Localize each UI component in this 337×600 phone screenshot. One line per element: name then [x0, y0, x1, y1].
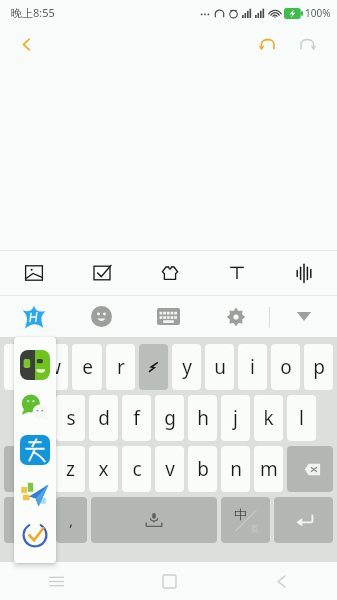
button[interactable]: m: [254, 446, 283, 492]
button[interactable]: z: [55, 446, 85, 492]
staticText: o: [280, 354, 292, 380]
staticText: y: [182, 354, 192, 380]
button[interactable]: WeChat: [15, 387, 55, 427]
staticText: g: [164, 405, 176, 431]
staticText: e: [82, 354, 93, 380]
button[interactable]: Enter: [274, 497, 333, 543]
staticText: a: [32, 405, 43, 431]
button[interactable]: p: [304, 344, 333, 390]
button[interactable]: g: [155, 395, 184, 441]
button[interactable]: Back: [225, 562, 337, 600]
staticText: r: [117, 354, 125, 380]
staticText: 晚上8:55: [11, 5, 55, 20]
button[interactable]: Recents: [0, 562, 113, 600]
button[interactable]: n: [221, 446, 250, 492]
button[interactable]: Keyboard: [135, 296, 202, 337]
staticText: u: [214, 354, 226, 380]
button[interactable]: w: [38, 344, 68, 390]
button[interactable]: Undo: [251, 28, 283, 60]
button[interactable]: d: [89, 395, 118, 441]
staticText: l: [299, 405, 304, 431]
button[interactable]: c: [122, 446, 151, 492]
button[interactable]: Checklist: [68, 251, 136, 295]
staticText: n: [230, 456, 242, 482]
staticText: d: [98, 405, 110, 431]
button[interactable]: Share: [15, 473, 55, 513]
button[interactable]: Back: [10, 28, 42, 60]
button[interactable]: Settings: [202, 296, 269, 337]
button[interactable]: Sticker: [136, 251, 203, 295]
staticText: j: [233, 405, 238, 431]
button[interactable]: a: [22, 395, 52, 441]
button[interactable]: Shift: [4, 446, 51, 492]
staticText: k: [263, 405, 274, 431]
staticText: m: [260, 456, 278, 482]
button[interactable]: f: [122, 395, 151, 441]
staticText: h: [197, 405, 209, 431]
button[interactable]: o: [271, 344, 300, 390]
staticText: v: [165, 456, 175, 482]
button[interactable]: Switch language: [221, 497, 270, 543]
button[interactable]: e: [72, 344, 102, 390]
staticText: 英: [250, 523, 259, 534]
button[interactable]: l: [287, 395, 316, 441]
staticText: ,: [69, 510, 74, 530]
staticText: q: [13, 354, 25, 380]
button[interactable]: Alipay: [15, 430, 55, 470]
button[interactable]: Insert image: [0, 251, 68, 295]
button[interactable]: r: [106, 344, 135, 390]
button[interactable]: 123: [4, 497, 52, 543]
button[interactable]: y: [172, 344, 201, 390]
button[interactable]: ,: [56, 497, 87, 543]
button[interactable]: s: [56, 395, 85, 441]
staticText: i: [250, 354, 255, 380]
staticText: s: [66, 405, 76, 431]
button[interactable]: q: [4, 344, 34, 390]
button[interactable]: QQ: [15, 345, 55, 385]
button[interactable]: Redo: [291, 28, 323, 60]
staticText: b: [197, 456, 209, 482]
button[interactable]: Collapse keyboard: [270, 296, 337, 337]
button[interactable]: b: [188, 446, 217, 492]
staticText: 中: [234, 506, 247, 522]
staticText: c: [132, 456, 142, 482]
button[interactable]: Voice: [270, 251, 337, 295]
staticText: 123: [15, 510, 41, 530]
button[interactable]: h: [188, 395, 217, 441]
staticText: f: [133, 405, 140, 431]
staticText: w: [46, 354, 61, 380]
button[interactable]: Space: [91, 497, 217, 543]
button[interactable]: i: [238, 344, 267, 390]
button[interactable]: Text style: [203, 251, 270, 295]
button[interactable]: x: [89, 446, 118, 492]
button[interactable]: j: [221, 395, 250, 441]
button[interactable]: Input method logo: [0, 296, 68, 337]
button[interactable]: t: [139, 344, 168, 390]
button[interactable]: u: [205, 344, 234, 390]
button[interactable]: k: [254, 395, 283, 441]
button[interactable]: Backspace: [287, 446, 333, 492]
button[interactable]: Home: [113, 562, 225, 600]
staticText: 100%: [305, 6, 331, 20]
button[interactable]: Emoji: [68, 296, 135, 337]
button[interactable]: Tasks: [15, 515, 55, 555]
staticText: p: [313, 354, 325, 380]
button[interactable]: v: [155, 446, 184, 492]
staticText: z: [66, 456, 75, 482]
staticText: x: [98, 456, 109, 482]
